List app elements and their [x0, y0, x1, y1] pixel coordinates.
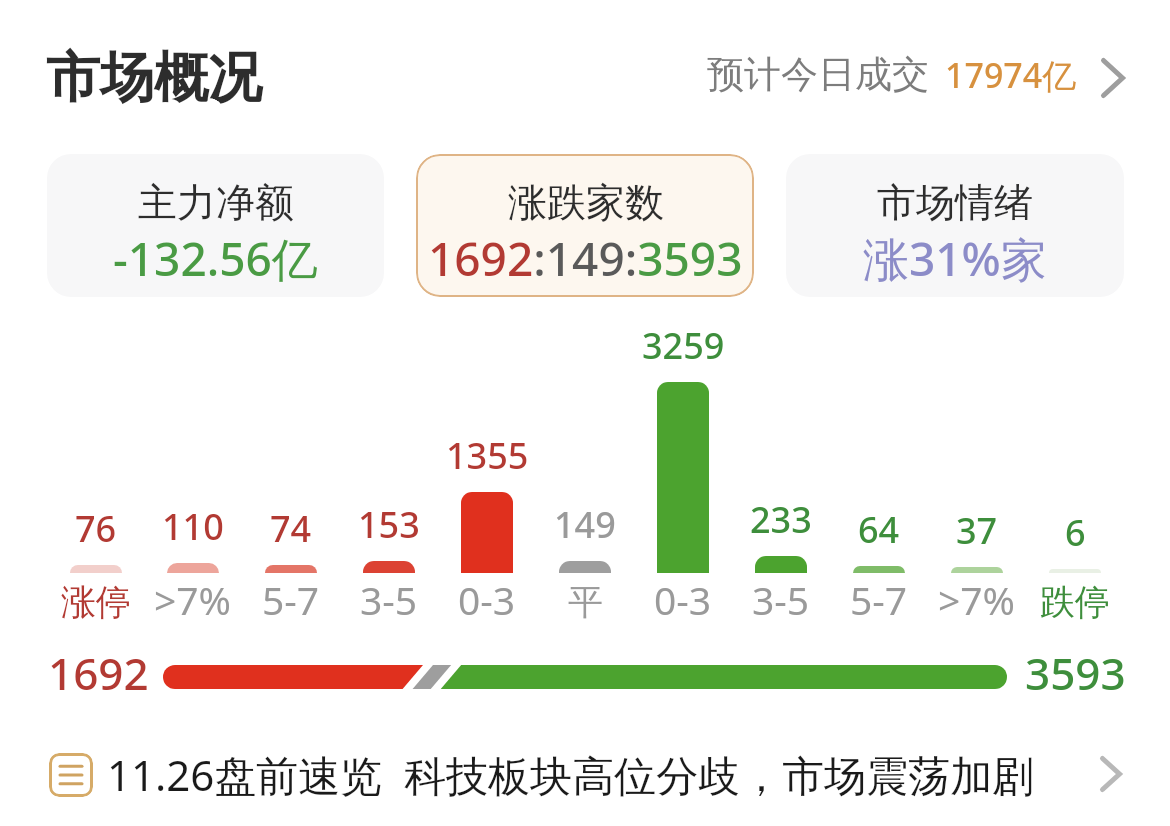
- staticText: 3-5: [360, 573, 418, 626]
- staticText: 1692:149:3593: [428, 227, 743, 290]
- staticText: 110: [162, 502, 224, 551]
- staticText: 涨停: [61, 580, 131, 624]
- staticText: 74: [270, 504, 312, 553]
- button[interactable]: 涨跌家数: [416, 154, 754, 297]
- staticText: 233: [750, 495, 812, 544]
- button[interactable]: 预计今日成交: [707, 51, 1125, 98]
- staticText: 平: [568, 580, 603, 624]
- other: 查看更多: [1100, 756, 1122, 792]
- staticText: 市场概况: [46, 44, 262, 112]
- staticText: >7%: [938, 573, 1016, 626]
- staticText: 17974亿: [945, 52, 1077, 98]
- button[interactable]: 市场情绪: [786, 154, 1124, 297]
- staticText: 3593: [1025, 643, 1126, 703]
- staticText: 37: [956, 506, 998, 555]
- button[interactable]: 主力净额: [47, 154, 384, 297]
- button[interactable]: 11.26盘前速览 科技板块高位分歧，市场震荡加剧: [0, 726, 1170, 826]
- staticText: 3259: [642, 321, 725, 370]
- staticText: 6: [1065, 508, 1086, 557]
- other: 查看成交详情: [1101, 58, 1125, 98]
- staticText: 76: [75, 504, 117, 553]
- staticText: 5-7: [850, 573, 908, 626]
- staticText: 1355: [446, 431, 529, 480]
- staticText: 1692: [48, 643, 149, 703]
- staticText: -132.56亿: [113, 227, 318, 290]
- staticText: 149: [554, 500, 616, 549]
- staticText: 跌停: [1040, 580, 1110, 624]
- staticText: >7%: [154, 573, 232, 626]
- staticText: 涨跌家数: [508, 178, 664, 227]
- staticText: 市场情绪: [877, 178, 1033, 227]
- staticText: 64: [858, 505, 900, 554]
- staticText: 0-3: [458, 573, 516, 626]
- staticText: 11.26盘前速览 科技板块高位分歧，市场震荡加剧: [107, 746, 1035, 803]
- staticText: 5-7: [262, 573, 320, 626]
- staticText: 预计今日成交: [707, 51, 929, 98]
- staticText: 主力净额: [138, 178, 294, 227]
- staticText: 0-3: [654, 573, 712, 626]
- staticText: 涨31%家: [863, 227, 1047, 290]
- staticText: 153: [358, 500, 420, 549]
- staticText: 3-5: [752, 573, 810, 626]
